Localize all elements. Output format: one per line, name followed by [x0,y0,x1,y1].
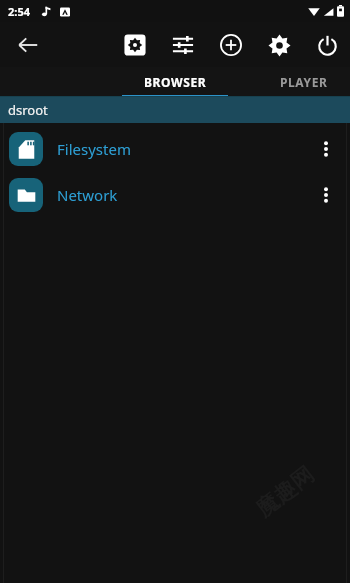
button[interactable]: Network [0,177,350,213]
button[interactable]: More options for Network [308,177,344,213]
staticText: Network [57,185,118,205]
staticText: 2:54 [8,4,30,19]
button[interactable]: BROWSER [122,67,228,97]
button[interactable]: Equalizer settings [118,28,152,62]
button[interactable]: PLAYER [258,67,350,97]
staticText: dsroot [8,101,48,119]
staticText: PLAYER [280,74,328,90]
staticText: BROWSER [144,74,207,90]
button[interactable]: Tune [166,28,200,62]
button[interactable]: Add [214,28,248,62]
button[interactable]: Back [10,27,46,63]
button[interactable]: Power off [310,28,344,62]
button[interactable]: dsroot [0,97,350,123]
button[interactable]: More options for Filesystem [308,131,344,167]
staticText: 魔趣网 [250,461,320,523]
staticText: Filesystem [57,139,131,159]
button[interactable]: Filesystem [0,131,350,167]
button[interactable]: Settings [262,28,296,62]
